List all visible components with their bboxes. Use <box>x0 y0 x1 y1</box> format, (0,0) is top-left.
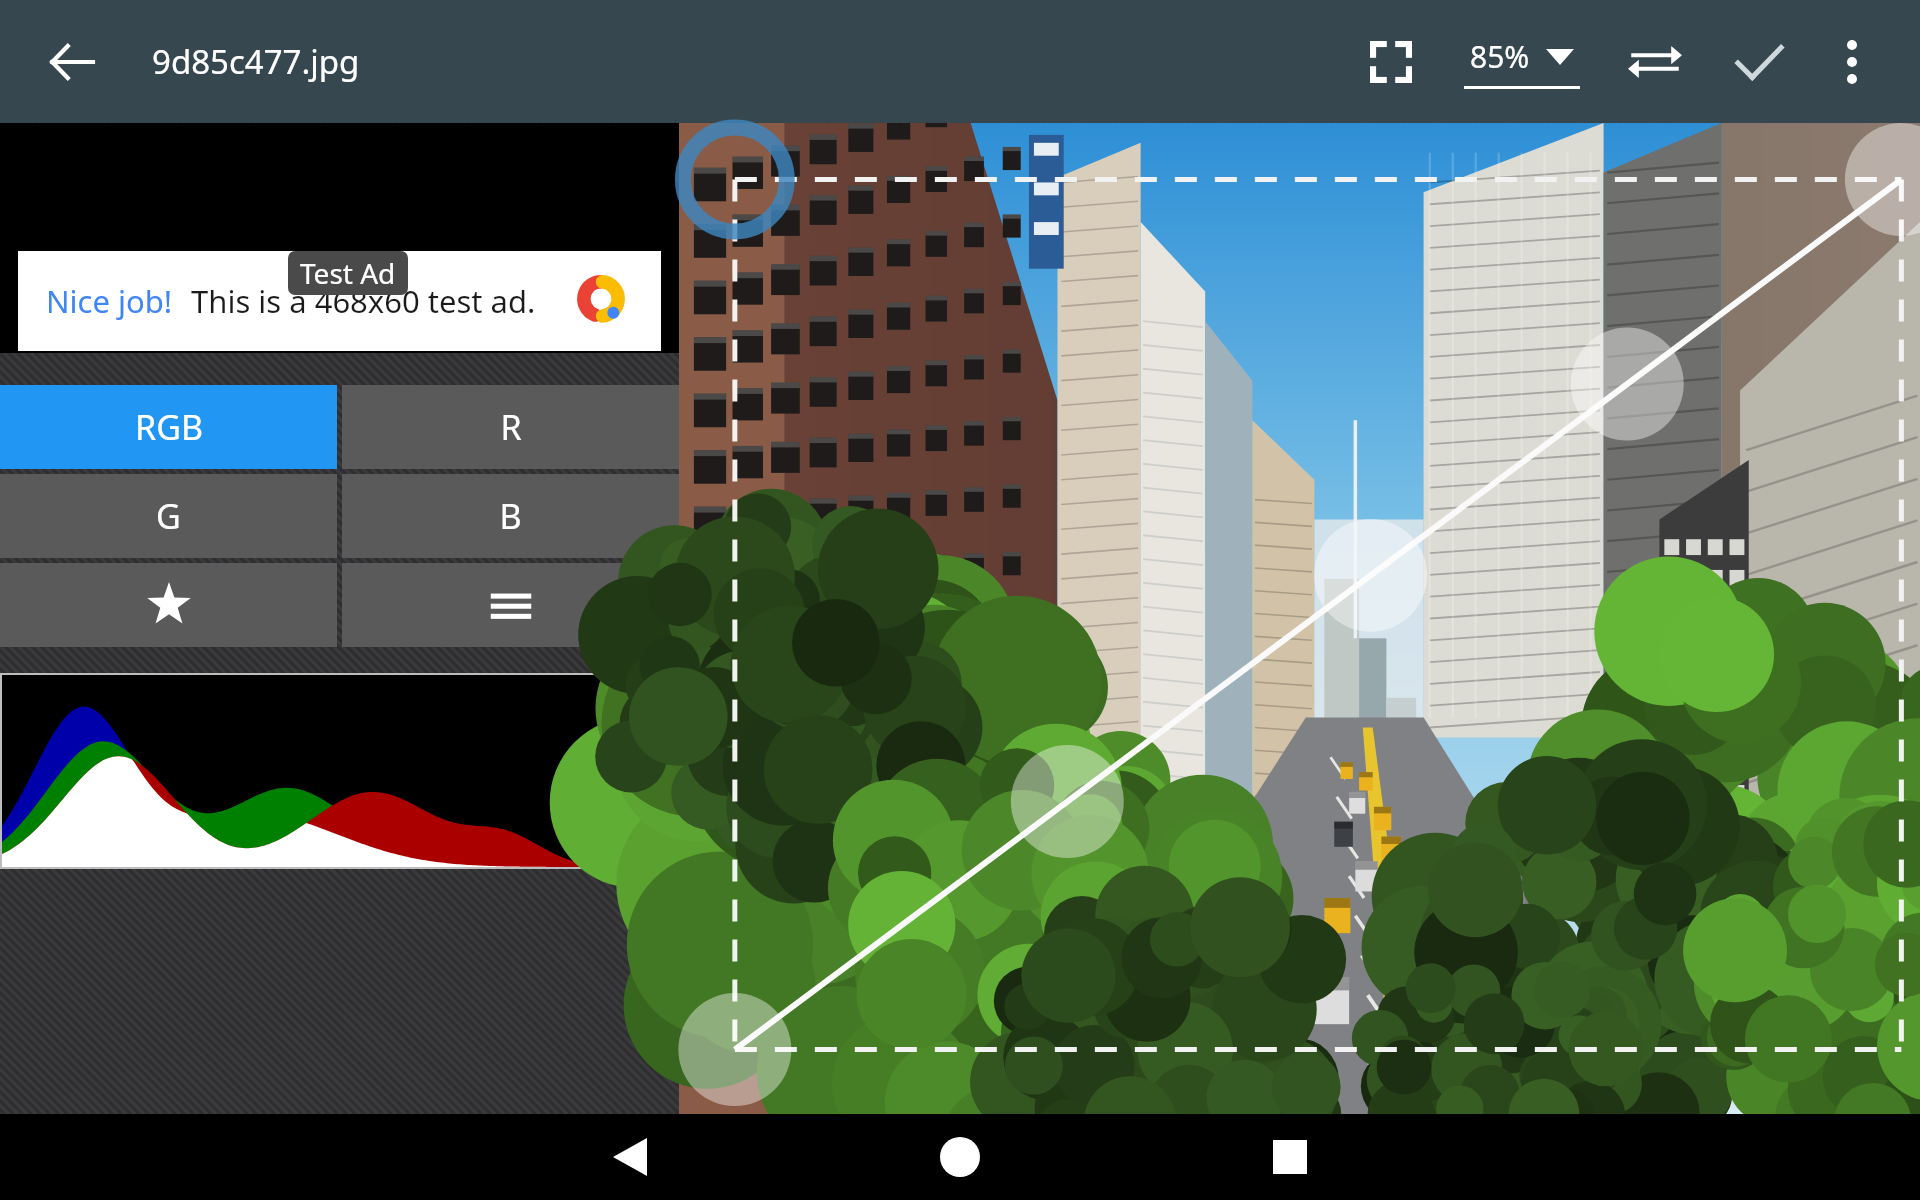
button[interactable]: More options <box>1810 20 1894 104</box>
button[interactable]: 85% <box>1458 36 1586 89</box>
button[interactable]: Photo canvas <box>679 123 1920 1114</box>
staticText: 9d85c477.jpg <box>152 39 360 84</box>
button[interactable]: G <box>0 474 337 558</box>
staticText: Test Ad <box>300 254 396 292</box>
button[interactable]: Back <box>34 24 110 100</box>
button[interactable]: Nice job! <box>18 251 661 351</box>
button[interactable] <box>2 675 677 867</box>
button[interactable]: Favorite <box>0 563 337 647</box>
staticText: G <box>156 493 181 539</box>
button[interactable]: RGB <box>0 385 337 469</box>
button[interactable]: Recent apps <box>1215 1114 1365 1200</box>
button[interactable]: B <box>342 474 679 558</box>
button[interactable]: Compare <box>1610 17 1700 107</box>
staticText: This is a 468x60 test ad. <box>191 280 536 322</box>
button[interactable]: R <box>342 385 679 469</box>
button[interactable]: Apply <box>1714 17 1804 107</box>
staticText: RGB <box>135 404 203 450</box>
button[interactable]: Fit to screen <box>1346 17 1436 107</box>
staticText: 85% <box>1470 36 1530 77</box>
staticText: B <box>499 493 522 539</box>
button[interactable]: Back <box>555 1114 705 1200</box>
staticText: Nice job! <box>46 280 173 322</box>
staticText: R <box>500 404 522 450</box>
button[interactable]: Menu <box>342 563 679 647</box>
button[interactable]: Home <box>885 1114 1035 1200</box>
